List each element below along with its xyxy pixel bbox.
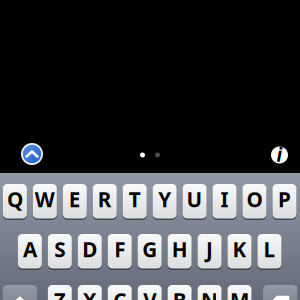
staticText: J bbox=[206, 235, 213, 263]
staticText: K bbox=[232, 235, 246, 263]
staticText: D bbox=[82, 235, 97, 263]
staticText: R bbox=[98, 185, 112, 213]
staticText: Y bbox=[158, 185, 171, 213]
staticText: Z bbox=[54, 286, 66, 300]
staticText: V bbox=[143, 286, 156, 300]
staticText: B bbox=[173, 286, 187, 300]
staticText: S bbox=[54, 235, 65, 263]
staticText: E bbox=[69, 185, 81, 213]
button[interactable]: X bbox=[78, 284, 102, 300]
button[interactable]: M bbox=[227, 284, 251, 300]
button[interactable]: D bbox=[78, 233, 102, 269]
button[interactable]: Delete bbox=[263, 284, 297, 300]
staticText: P bbox=[278, 185, 291, 213]
button[interactable]: Q bbox=[3, 183, 27, 219]
button[interactable]: J bbox=[198, 233, 222, 269]
staticText: i bbox=[276, 142, 282, 167]
button[interactable]: G bbox=[138, 233, 162, 269]
button[interactable]: Shift bbox=[3, 284, 37, 300]
button[interactable]: Z bbox=[48, 284, 72, 300]
button[interactable]: W bbox=[33, 183, 57, 219]
staticText: N bbox=[201, 286, 218, 300]
staticText: W bbox=[35, 185, 55, 213]
button[interactable]: U bbox=[183, 183, 207, 219]
button[interactable]: P bbox=[272, 183, 296, 219]
staticText: F bbox=[114, 235, 125, 263]
button[interactable]: N bbox=[198, 284, 222, 300]
button[interactable]: R bbox=[93, 183, 117, 219]
button[interactable]: Info bbox=[265, 141, 293, 169]
button[interactable]: C bbox=[108, 284, 132, 300]
button[interactable]: E bbox=[63, 183, 87, 219]
staticText: H bbox=[172, 235, 188, 263]
staticText: T bbox=[129, 185, 141, 213]
staticText: M bbox=[230, 286, 249, 300]
button[interactable]: B bbox=[168, 284, 192, 300]
staticText: G bbox=[142, 235, 157, 263]
staticText: U bbox=[187, 185, 203, 213]
staticText: O bbox=[246, 185, 262, 213]
button[interactable]: V bbox=[138, 284, 162, 300]
staticText: X bbox=[83, 286, 97, 300]
staticText: C bbox=[113, 286, 126, 300]
staticText: I bbox=[221, 185, 229, 213]
staticText: Q bbox=[7, 185, 23, 213]
staticText: L bbox=[263, 235, 275, 263]
button[interactable]: Hide keyboard bbox=[16, 138, 48, 170]
button[interactable]: F bbox=[108, 233, 132, 269]
button[interactable]: A bbox=[18, 233, 42, 269]
button[interactable]: H bbox=[168, 233, 192, 269]
button[interactable]: L bbox=[257, 233, 281, 269]
button[interactable]: S bbox=[48, 233, 72, 269]
button[interactable]: T bbox=[123, 183, 147, 219]
button[interactable]: K bbox=[227, 233, 251, 269]
button[interactable]: Y bbox=[153, 183, 177, 219]
button[interactable]: I bbox=[213, 183, 237, 219]
button[interactable]: O bbox=[242, 183, 266, 219]
staticText: A bbox=[23, 235, 37, 263]
